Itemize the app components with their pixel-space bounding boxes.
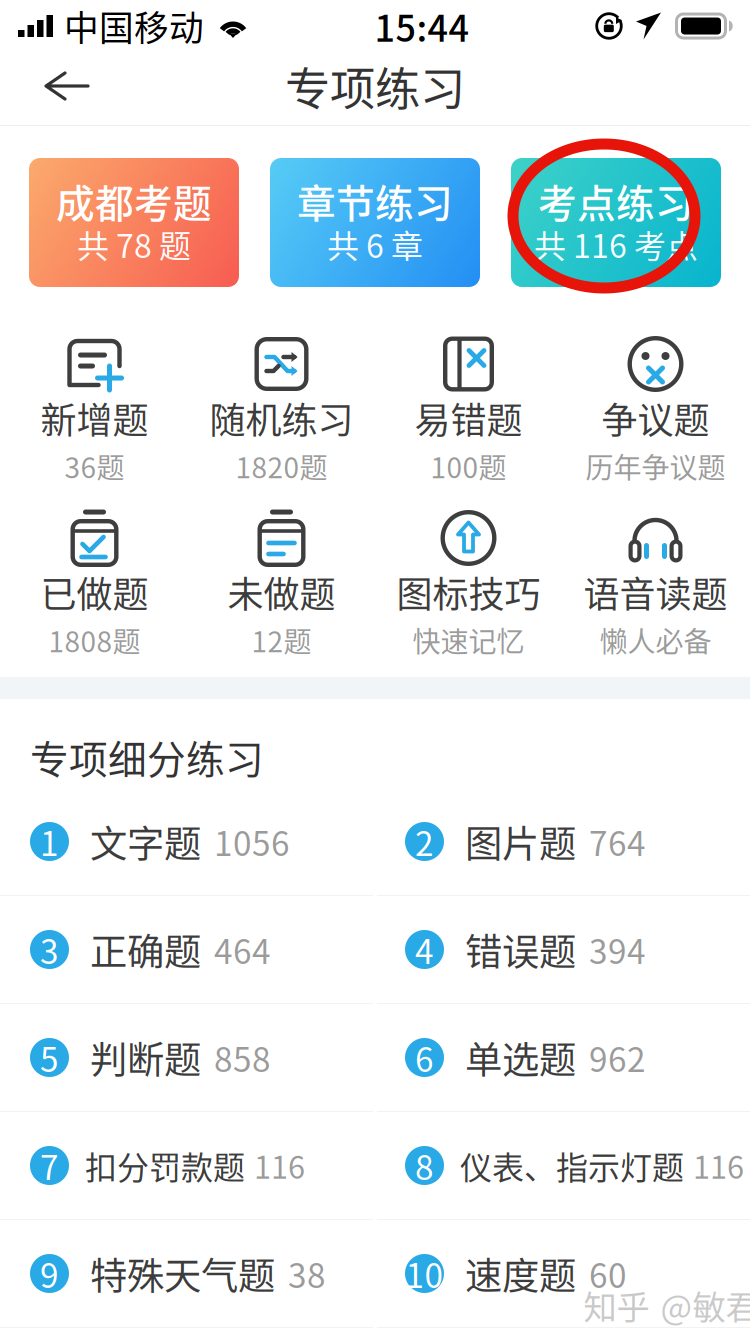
staticText: 仪表、指示灯题	[460, 1142, 684, 1189]
button[interactable]: 3	[0, 896, 375, 1003]
staticText: 速度题	[465, 1246, 576, 1301]
staticText: @敏君	[660, 1281, 750, 1329]
staticText: 专项细分练习	[30, 729, 264, 785]
staticText: 7	[40, 1141, 59, 1190]
staticText: 图片题	[465, 814, 576, 869]
button[interactable]: 考点练习	[511, 158, 721, 287]
staticText: 962	[589, 1033, 646, 1082]
staticText: 已做题	[40, 566, 148, 618]
staticText: 懒人必备	[599, 620, 711, 660]
button[interactable]: 图标技巧	[375, 494, 562, 668]
staticText: 判断题	[90, 1030, 201, 1085]
staticText: 1056	[214, 817, 290, 866]
button[interactable]: 易错题	[375, 320, 562, 494]
staticText: 15:44	[374, 0, 469, 52]
staticText: 38	[288, 1249, 326, 1298]
button[interactable]: Back	[22, 50, 112, 122]
button[interactable]: 4	[375, 896, 750, 1003]
button[interactable]: 6	[375, 1004, 750, 1111]
button[interactable]: 随机练习	[188, 320, 375, 494]
staticText: 历年争议题	[585, 446, 725, 486]
button[interactable]: 章节练习	[270, 158, 480, 287]
button[interactable]: 2	[375, 788, 750, 895]
staticText: 特殊天气题	[90, 1246, 275, 1301]
staticText: 知乎	[583, 1281, 649, 1329]
button[interactable]: 已做题	[1, 494, 188, 668]
button[interactable]: 7	[0, 1112, 375, 1219]
staticText: 116	[693, 1143, 744, 1188]
staticText: 成都考题	[56, 173, 212, 229]
button[interactable]: 未做题	[188, 494, 375, 668]
button[interactable]: 9	[0, 1220, 375, 1327]
staticText: 扣分罚款题	[85, 1142, 245, 1189]
staticText: 随机练习	[209, 392, 353, 444]
staticText: 2	[415, 817, 434, 866]
staticText: 共 116 考点	[534, 221, 698, 267]
staticText: 100题	[430, 446, 506, 486]
staticText: 60	[589, 1249, 627, 1298]
staticText: 快速记忆	[412, 620, 524, 660]
staticText: 共 78 题	[77, 221, 191, 267]
staticText: 图标技巧	[396, 566, 540, 618]
button[interactable]: 语音读题	[562, 494, 749, 668]
staticText: 易错题	[414, 392, 522, 444]
staticText: 36题	[64, 446, 124, 486]
button[interactable]: 5	[0, 1004, 375, 1111]
staticText: 章节练习	[297, 173, 453, 229]
staticText: 错误题	[465, 922, 576, 977]
staticText: 考点练习	[538, 173, 694, 229]
button[interactable]: 成都考题	[29, 158, 239, 287]
staticText: 文字题	[90, 814, 201, 869]
staticText: 9	[40, 1249, 59, 1298]
staticText: 12题	[251, 620, 311, 660]
staticText: 共 6 章	[327, 221, 423, 267]
staticText: 6	[415, 1033, 434, 1082]
button[interactable]: 争议题	[562, 320, 749, 494]
staticText: 1	[40, 817, 59, 866]
staticText: 116	[254, 1143, 305, 1188]
staticText: 新增题	[40, 392, 148, 444]
staticText: 语音读题	[583, 566, 727, 618]
staticText: 单选题	[465, 1030, 576, 1085]
staticText: 394	[589, 925, 646, 974]
staticText: 1808题	[48, 620, 140, 660]
staticText: 正确题	[90, 922, 201, 977]
staticText: 764	[589, 817, 646, 866]
staticText: 争议题	[601, 392, 709, 444]
staticText: 464	[214, 925, 271, 974]
button[interactable]: 10	[375, 1220, 750, 1327]
button[interactable]: 8	[375, 1112, 750, 1219]
staticText: 未做题	[227, 566, 335, 618]
staticText: 4	[415, 925, 434, 974]
button[interactable]: 新增题	[1, 320, 188, 494]
staticText: 1820题	[235, 446, 327, 486]
staticText: 中国移动	[64, 1, 204, 51]
staticText: 5	[40, 1033, 59, 1082]
staticText: 10	[405, 1249, 443, 1298]
button[interactable]: 1	[0, 788, 375, 895]
staticText: 858	[214, 1033, 271, 1082]
staticText: 专项练习	[285, 53, 465, 119]
staticText: 3	[40, 925, 59, 974]
staticText: 8	[415, 1141, 434, 1190]
